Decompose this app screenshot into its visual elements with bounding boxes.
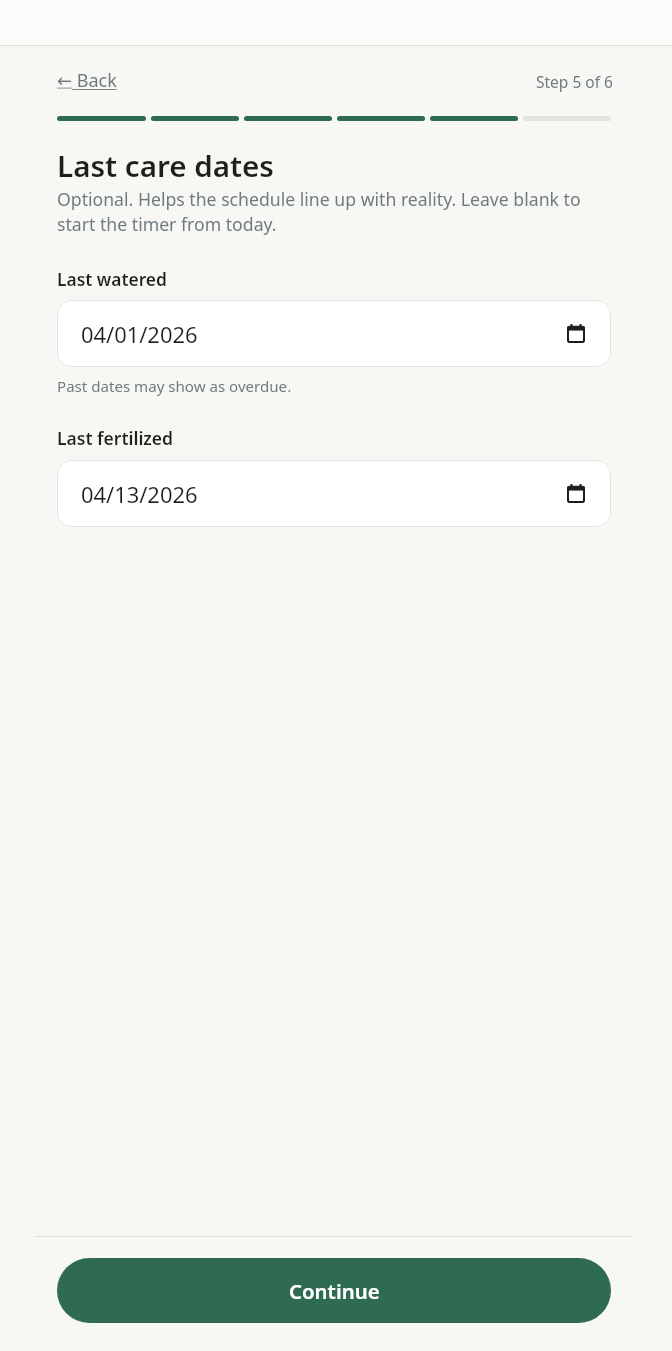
button[interactable]: 04/13/2026 [57,460,611,527]
button[interactable]: Open date picker for Last watered [567,324,585,343]
staticText: Last fertilized [57,426,174,450]
staticText: Last care dates [57,145,274,185]
button[interactable]: Continue [57,1258,611,1323]
staticText: 04/13/2026 [81,480,198,510]
staticText: Last watered [57,267,167,291]
button[interactable]: 04/01/2026 [57,300,611,367]
staticText: Step 5 of 6 [536,71,613,92]
staticText: 04/01/2026 [81,320,198,350]
staticText: Continue [289,1277,380,1305]
button[interactable]: ← Back [57,68,117,93]
button[interactable]: Open date picker for Last fertilized [567,484,585,503]
staticText: Past dates may show as overdue. [57,376,292,397]
staticText: Optional. Helps the schedule line up wit… [57,187,611,237]
staticText: ← Back [57,68,117,93]
